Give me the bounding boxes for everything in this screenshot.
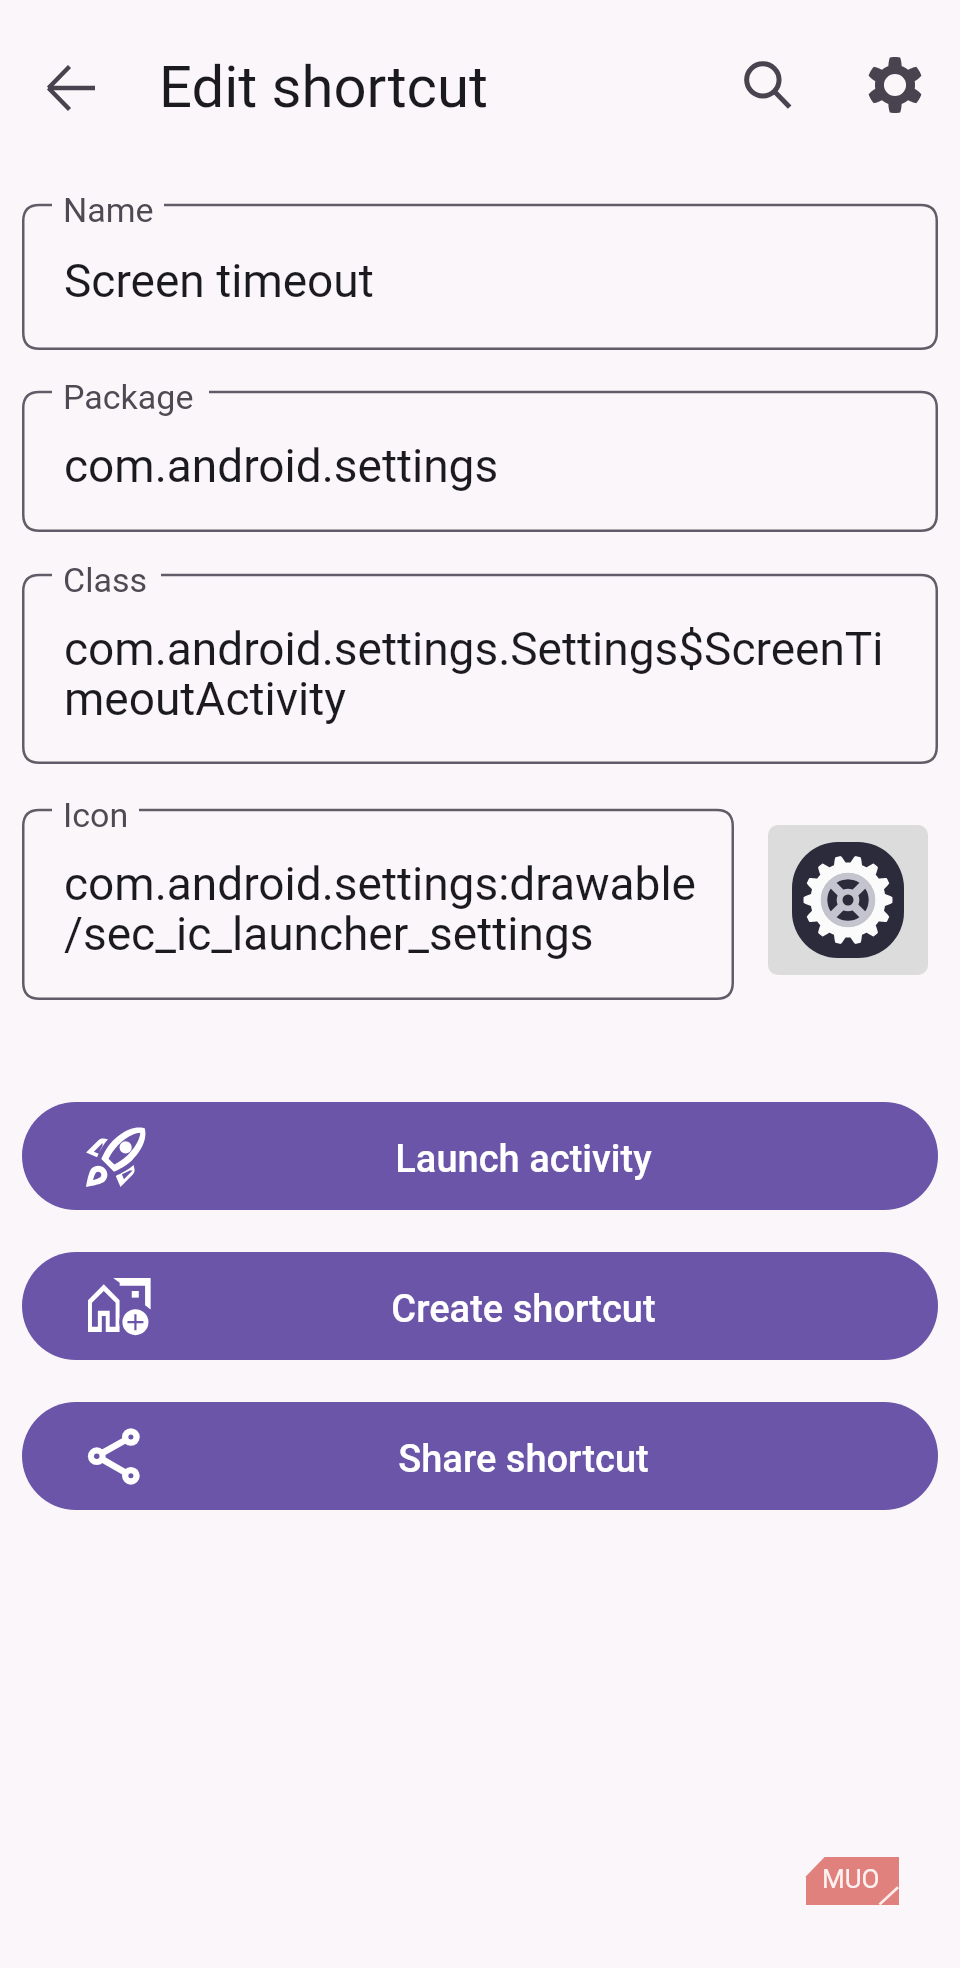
staticText: Create shortcut	[391, 1287, 656, 1331]
staticText: Launch activity	[395, 1137, 652, 1181]
button[interactable]: Back	[19, 36, 123, 140]
staticText: com.android.settings.Settings$ScreenTi m…	[64, 625, 884, 725]
button[interactable]: Settings	[844, 36, 948, 140]
staticText: Icon	[63, 797, 129, 835]
staticText: com.android.settings	[64, 442, 499, 492]
staticText: MUO	[822, 1866, 880, 1894]
staticText: com.android.settings:drawable /sec_ic_la…	[64, 860, 696, 960]
staticText: Name	[63, 192, 154, 230]
staticText: Share shortcut	[398, 1437, 649, 1481]
staticText: Class	[63, 562, 147, 600]
staticText: Edit shortcut	[159, 55, 488, 121]
button[interactable]: Search	[716, 33, 820, 137]
button[interactable]: Create shortcut	[22, 1252, 938, 1360]
button[interactable]: Share shortcut	[22, 1402, 938, 1510]
button[interactable]: Launch activity	[22, 1102, 938, 1210]
staticText: Package	[63, 379, 194, 417]
staticText: Screen timeout	[64, 257, 374, 307]
